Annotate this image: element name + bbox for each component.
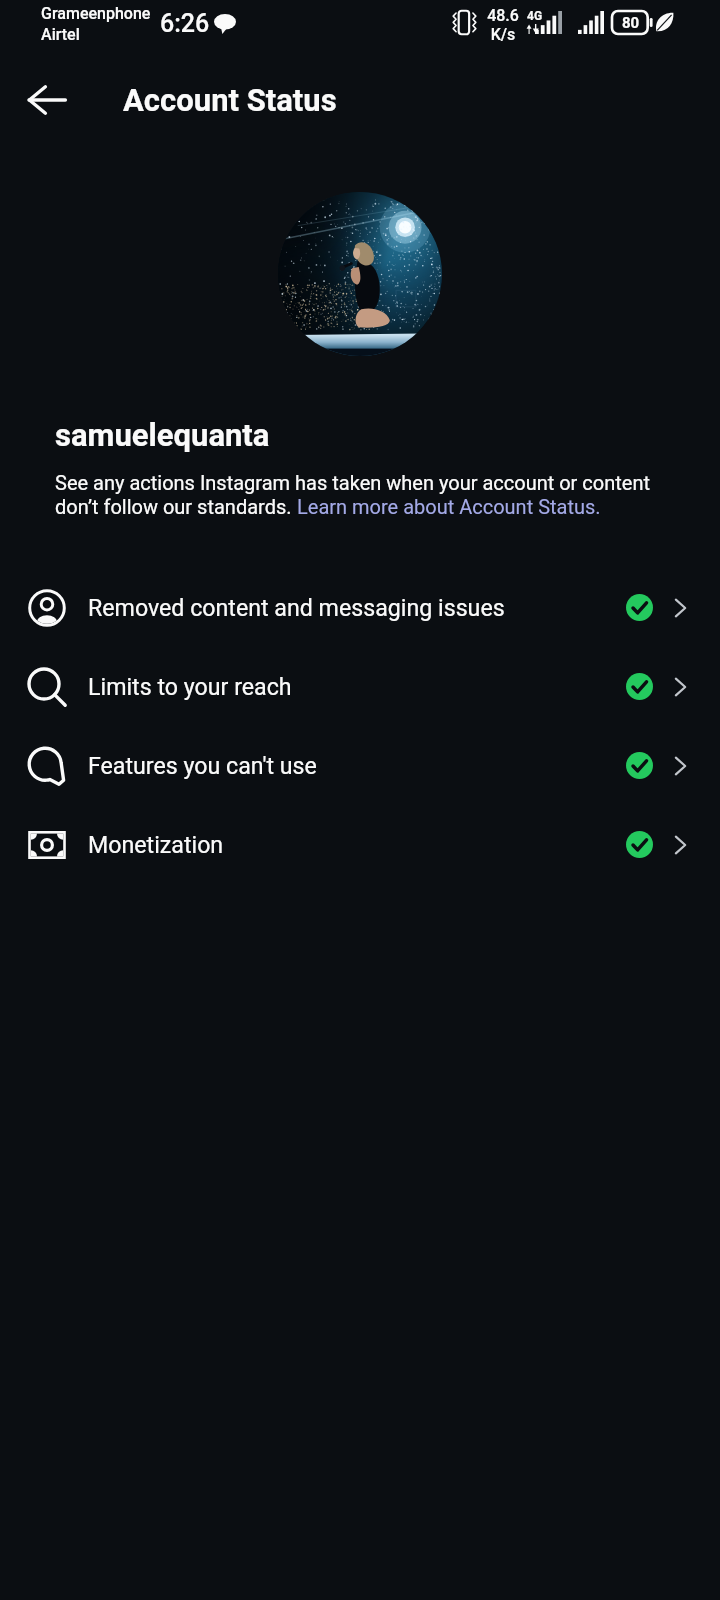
staticText: 6:26 xyxy=(160,9,210,38)
button[interactable]: Removed content and messaging issues xyxy=(0,568,720,647)
button[interactable]: Monetization xyxy=(0,805,720,884)
staticText: Features you can't use xyxy=(88,752,317,779)
staticText: 80 xyxy=(622,14,640,32)
button[interactable]: Back xyxy=(21,74,73,126)
staticText: Removed content and messaging issues xyxy=(88,594,505,621)
staticText: Grameenphone Airtel xyxy=(41,4,151,44)
staticText: samuelequanta xyxy=(55,417,270,453)
button[interactable]: Learn more about Account Status. xyxy=(297,495,601,518)
staticText: See any actions Instagram has taken when… xyxy=(55,471,650,494)
button[interactable]: Limits to your reach xyxy=(0,647,720,726)
staticText: 4G xyxy=(527,9,543,23)
staticText: 48.6 K/s xyxy=(487,6,519,44)
staticText: don’t follow our standards. xyxy=(55,495,297,518)
staticText: Limits to your reach xyxy=(88,673,292,700)
staticText: Account Status xyxy=(123,82,337,118)
staticText: Monetization xyxy=(88,831,224,858)
button[interactable]: Features you can't use xyxy=(0,726,720,805)
